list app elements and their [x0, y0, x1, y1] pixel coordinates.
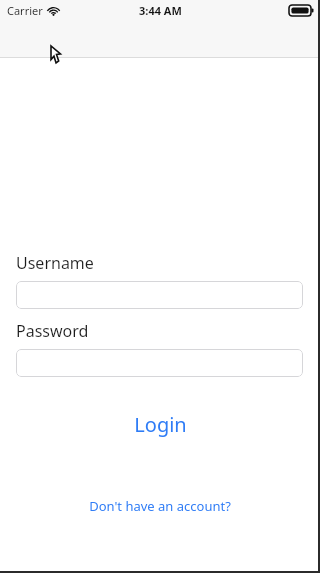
staticText: 3:44 AM — [139, 3, 182, 18]
staticText: Username — [16, 252, 94, 274]
staticText: Don't have an account? — [89, 497, 231, 515]
button[interactable]: Text input field — [16, 349, 303, 377]
staticText: Carrier — [7, 3, 43, 18]
button[interactable]: Login — [0, 407, 320, 441]
button[interactable]: Don't have an account? — [0, 495, 320, 517]
button[interactable]: Text input field — [16, 281, 303, 309]
staticText: Login — [134, 411, 187, 438]
staticText: Password — [16, 320, 89, 342]
